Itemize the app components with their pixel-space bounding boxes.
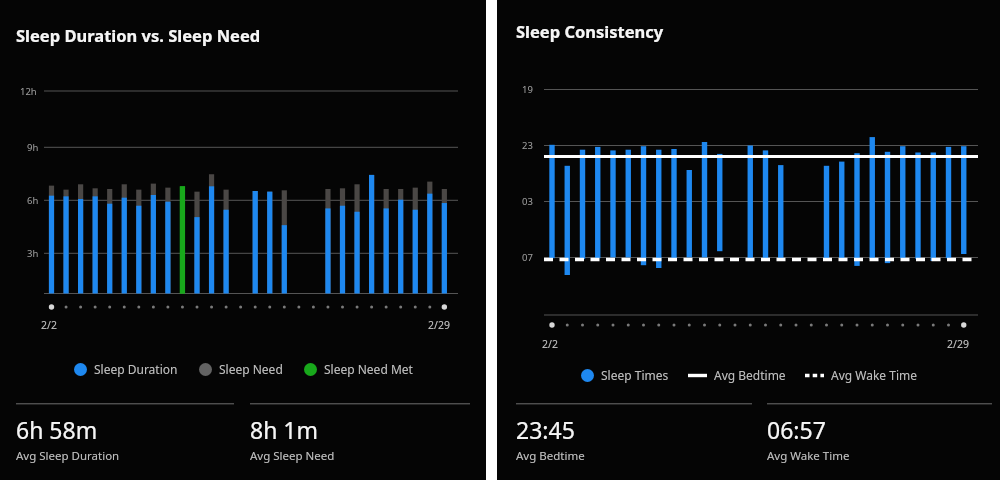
staticText: Sleep Need Met <box>324 361 413 377</box>
staticText: 03 <box>522 195 533 208</box>
staticText: 3h <box>27 247 39 260</box>
button[interactable]: 06:57 <box>767 403 992 434</box>
staticText: Avg Sleep Duration <box>16 448 120 464</box>
staticText: 2/2 <box>41 318 57 332</box>
staticText: 07 <box>522 251 533 264</box>
staticText: 23:45 <box>516 414 575 445</box>
staticText: Sleep Need <box>219 361 283 377</box>
button[interactable]: Sleep Need Met <box>304 361 413 377</box>
staticText: Sleep Duration vs. Sleep Need <box>16 24 261 46</box>
staticText: Avg Bedtime <box>714 367 786 383</box>
staticText: Sleep Duration <box>94 361 178 377</box>
staticText: 6h <box>27 194 39 207</box>
button[interactable]: Sleep Times <box>581 367 669 383</box>
staticText: Avg Sleep Need <box>250 448 335 464</box>
button[interactable]: Sleep Need <box>199 361 283 377</box>
staticText: 9h <box>27 141 39 154</box>
staticText: 06:57 <box>767 414 826 445</box>
staticText: Avg Wake Time <box>767 448 850 464</box>
staticText: 2/29 <box>947 337 969 351</box>
staticText: Sleep Times <box>601 367 669 383</box>
staticText: 19 <box>522 83 533 96</box>
button[interactable]: 6h 58m <box>16 403 234 434</box>
button[interactable]: Sleep Duration vs. Sleep Need <box>0 0 486 480</box>
staticText: 2/2 <box>542 337 558 351</box>
button[interactable]: Avg Wake Time <box>805 367 917 383</box>
button[interactable]: Sleep Duration <box>74 361 178 377</box>
staticText: 12h <box>20 85 37 98</box>
button[interactable]: 8h 1m <box>250 403 470 434</box>
button[interactable]: 23:45 <box>516 403 752 434</box>
button[interactable]: Avg Bedtime <box>688 367 786 383</box>
staticText: 6h 58m <box>16 414 98 445</box>
staticText: 23 <box>522 139 533 152</box>
staticText: Sleep Consistency <box>516 20 664 42</box>
button[interactable]: Sleep Consistency <box>497 0 1000 480</box>
staticText: Avg Wake Time <box>831 367 917 383</box>
staticText: 2/29 <box>428 318 450 332</box>
staticText: Avg Bedtime <box>516 448 585 464</box>
staticText: 8h 1m <box>250 414 319 445</box>
